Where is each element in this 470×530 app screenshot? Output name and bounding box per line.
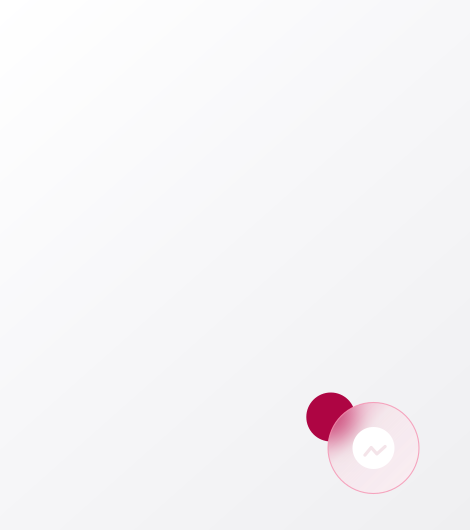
button[interactable]: Open chat	[328, 402, 419, 493]
